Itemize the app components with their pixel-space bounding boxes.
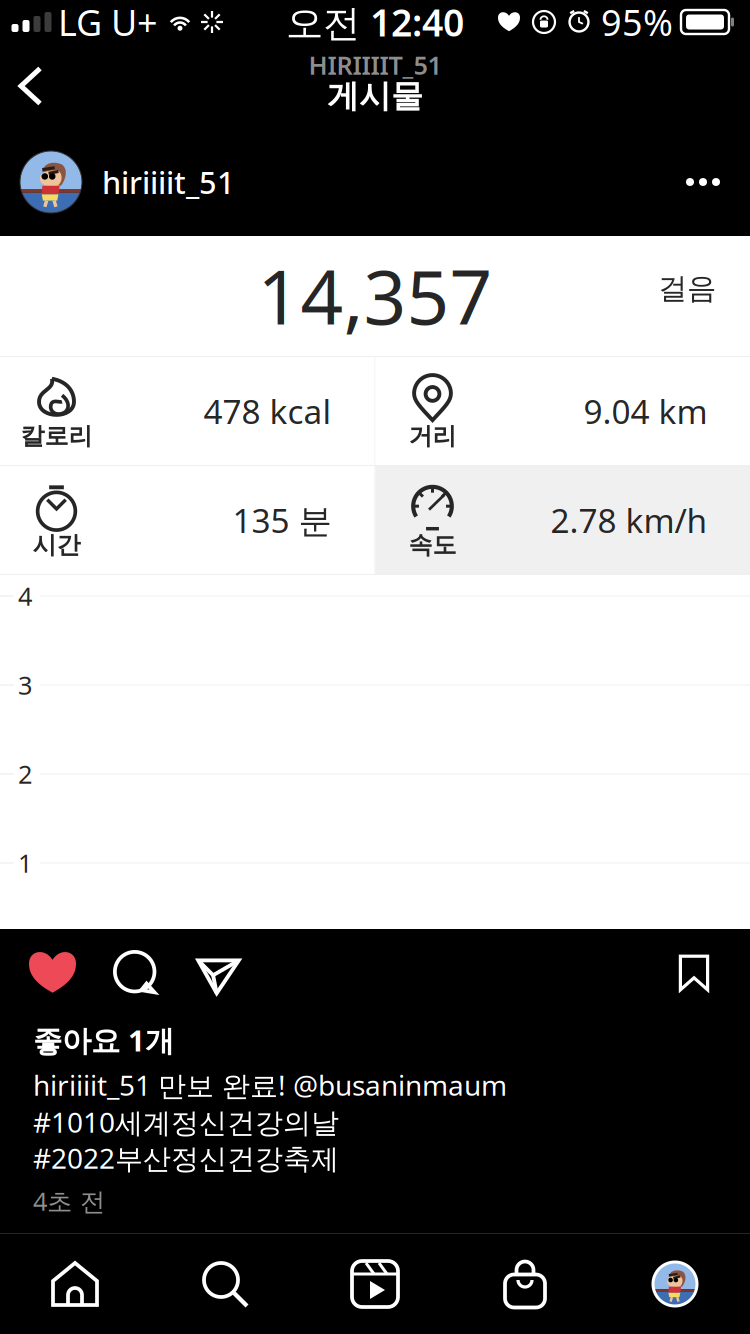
staticText: 4 — [18, 579, 32, 613]
button[interactable]: Back — [0, 52, 61, 119]
staticText: 9.04 km — [583, 389, 707, 433]
button[interactable]: Reels — [300, 1234, 450, 1334]
staticText: LG U+ — [58, 0, 158, 46]
button[interactable]: Shop — [450, 1234, 600, 1334]
button[interactable]: Profile — [600, 1234, 750, 1334]
staticText: #1010세계정신건강의날 — [33, 1103, 339, 1141]
staticText: 시간 — [32, 530, 80, 560]
staticText: 거리 — [408, 421, 456, 451]
staticText: 2 — [18, 757, 32, 791]
staticText: 3 — [18, 668, 32, 702]
staticText: 14,357 — [257, 246, 492, 345]
staticText: 오전 12:40 — [286, 0, 464, 47]
staticText: hiriiiit_51 만보 완료! @busaninmaum — [33, 1066, 507, 1104]
staticText: 95% — [601, 0, 673, 46]
staticText: 4초 전 — [33, 1184, 105, 1218]
button[interactable]: Save — [660, 937, 728, 1009]
staticText: 좋아요 1개 — [33, 1020, 174, 1059]
staticText: 걸음 — [658, 270, 716, 306]
staticText: 속도 — [408, 530, 456, 560]
staticText: hiriiiit_51 — [102, 162, 235, 202]
staticText: 게시물 — [327, 76, 423, 116]
button[interactable]: Home — [0, 1234, 150, 1334]
button[interactable]: Comment — [100, 935, 172, 1011]
button[interactable]: Share — [182, 934, 255, 1011]
staticText: 478 kcal — [203, 389, 331, 433]
staticText: #2022부산정신건강축제 — [33, 1139, 339, 1177]
button[interactable]: Like — [15, 933, 90, 1012]
staticText: 2.78 km/h — [550, 498, 707, 542]
staticText: 칼로리 — [20, 421, 92, 451]
staticText: 1 — [18, 846, 32, 880]
staticText: 135 분 — [232, 498, 331, 542]
staticText: HIRIIIIT_51 — [308, 48, 441, 82]
button[interactable]: hiriiiit_51 — [20, 151, 235, 213]
button[interactable]: More options — [671, 158, 735, 206]
button[interactable]: Search — [150, 1234, 300, 1334]
